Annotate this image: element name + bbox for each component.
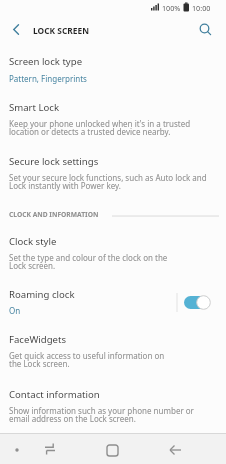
button[interactable] (38, 435, 64, 462)
button[interactable] (193, 14, 219, 46)
staticText: FaceWidgets (9, 333, 67, 346)
staticText: CLOCK AND INFORMATION (9, 210, 99, 219)
staticText: Show information such as your phone numb… (9, 405, 194, 424)
button[interactable] (100, 435, 126, 462)
button[interactable]: FaceWidgets (0, 328, 226, 376)
staticText: LOCK SCREEN (33, 25, 90, 36)
button[interactable]: Contact information (0, 383, 226, 431)
staticText: Screen lock type (9, 55, 83, 68)
staticText: Get quick access to useful information o… (9, 350, 165, 369)
staticText: Pattern, Fingerprints (9, 73, 87, 84)
staticText: Smart Lock (9, 101, 60, 114)
staticText: Secure lock settings (9, 155, 99, 168)
staticText: Set the type and colour of the clock on … (9, 252, 168, 271)
button[interactable]: Roaming clock (0, 285, 226, 319)
button[interactable] (0, 14, 30, 46)
staticText: Clock style (9, 235, 57, 248)
button[interactable]: Screen lock type (0, 50, 226, 88)
staticText: Keep your phone unlocked when it's in a … (9, 118, 191, 137)
staticText: 10:00 (192, 3, 211, 13)
button[interactable] (160, 435, 186, 462)
staticText: Contact information (9, 388, 100, 401)
staticText: 100% (162, 3, 181, 13)
staticText: On (9, 305, 21, 316)
staticText: Roaming clock (9, 288, 75, 301)
staticText: Set your secure lock functions, such as … (9, 172, 207, 191)
button[interactable]: Clock style (0, 230, 226, 278)
button[interactable]: Secure lock settings (0, 150, 226, 198)
button[interactable]: Smart Lock (0, 96, 226, 144)
